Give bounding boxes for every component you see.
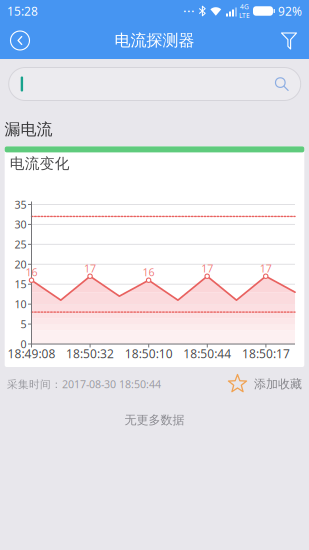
staticText: 采集时间：2017-08-30 18:50:44 — [7, 377, 161, 391]
staticText: 17 — [260, 261, 272, 275]
staticText: 30 — [14, 217, 26, 231]
staticText: LTE — [239, 11, 250, 20]
staticText: 17 — [201, 261, 213, 275]
staticText: 20 — [14, 257, 26, 271]
staticText: 15 — [14, 277, 26, 291]
staticText: 16 — [143, 265, 155, 279]
staticText: 添加收藏 — [254, 377, 302, 391]
staticText: ··· — [183, 2, 195, 20]
staticText: 0 — [20, 337, 26, 351]
staticText: 18:49:08 — [7, 345, 55, 361]
button[interactable] — [9, 67, 301, 100]
staticText: 电流变化 — [10, 154, 70, 172]
staticText: 10 — [14, 297, 26, 311]
staticText: 17 — [84, 261, 96, 275]
staticText: 25 — [14, 237, 26, 251]
staticText: 15:28 — [7, 3, 38, 19]
staticText: 5 — [20, 317, 26, 331]
staticText: 18:50:17 — [242, 345, 290, 361]
staticText: 无更多数据 — [124, 413, 184, 427]
staticText: 16 — [25, 265, 37, 279]
staticText: 18:50:44 — [183, 345, 231, 361]
staticText: 4G — [240, 2, 249, 11]
staticText: 电流探测器 — [114, 31, 194, 50]
staticText: 18:50:10 — [125, 345, 173, 361]
staticText: 35 — [14, 197, 26, 212]
staticText: 92% — [278, 3, 302, 19]
staticText: 18:50:32 — [66, 345, 114, 361]
button[interactable]: Filter — [269, 22, 309, 59]
button[interactable]: Back — [0, 22, 40, 59]
staticText: 漏电流 — [4, 120, 52, 139]
button[interactable]: 添加收藏 — [212, 372, 302, 396]
